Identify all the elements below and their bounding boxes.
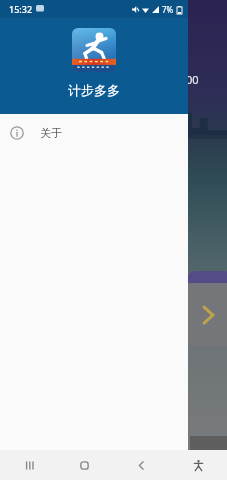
staticText: 15:32: [9, 3, 33, 15]
staticText: 00: [186, 72, 199, 87]
button[interactable]: Recents: [0, 450, 56, 480]
staticText: 计步多多: [68, 82, 120, 98]
button[interactable]: Accessibility: [170, 450, 227, 480]
button[interactable]: 计步多多 app icon: [72, 28, 116, 72]
other: About: [10, 126, 24, 140]
button[interactable]: [187, 271, 227, 347]
button[interactable]: Home: [56, 450, 113, 480]
button[interactable]: About: [0, 114, 188, 152]
button[interactable]: Back: [113, 450, 170, 480]
staticText: 7%: [162, 4, 174, 15]
staticText: 关于: [40, 126, 62, 140]
